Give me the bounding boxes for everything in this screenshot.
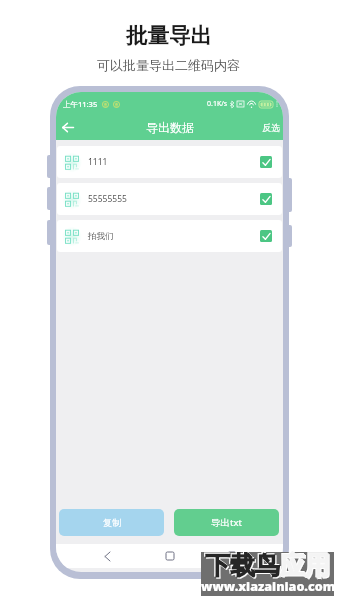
button[interactable]: 导出txt [174, 509, 279, 536]
staticText: 可以批量导出二维码内容 [97, 57, 240, 73]
button[interactable]: 拍我们 [57, 220, 282, 252]
button[interactable]: 复制 [59, 509, 164, 536]
staticText: 55555555 [88, 193, 127, 205]
staticText: 0.1K/s [207, 99, 228, 109]
staticText: 反选 [262, 122, 280, 133]
button[interactable]: Selected [260, 156, 272, 168]
staticText: 拍我们 [88, 231, 114, 242]
staticText: 上午11:35 [63, 99, 98, 109]
button[interactable]: 55555555 [57, 183, 282, 215]
staticText: www.xiazainiao.com [201, 578, 334, 595]
staticText: 应用 [280, 550, 330, 581]
button[interactable]: Recents [221, 545, 243, 567]
staticText: 下载鸟 [205, 550, 280, 581]
staticText: 下载鸟应用 [206, 551, 331, 582]
staticText: 导出数据 [146, 120, 194, 135]
button[interactable]: Back [96, 545, 118, 567]
staticText: 导出txt [211, 516, 242, 529]
button[interactable]: 反选 [255, 118, 283, 137]
button[interactable]: Selected [260, 193, 272, 205]
button[interactable]: Selected [260, 230, 272, 242]
staticText: 下载鸟应用 [204, 549, 329, 580]
staticText: 1111 [88, 156, 108, 168]
button[interactable]: 1111 [57, 146, 282, 178]
staticText: 复制 [103, 517, 121, 528]
button[interactable]: Home [159, 545, 181, 567]
staticText: 批量导出 [126, 22, 212, 49]
button[interactable]: Back [56, 115, 80, 139]
